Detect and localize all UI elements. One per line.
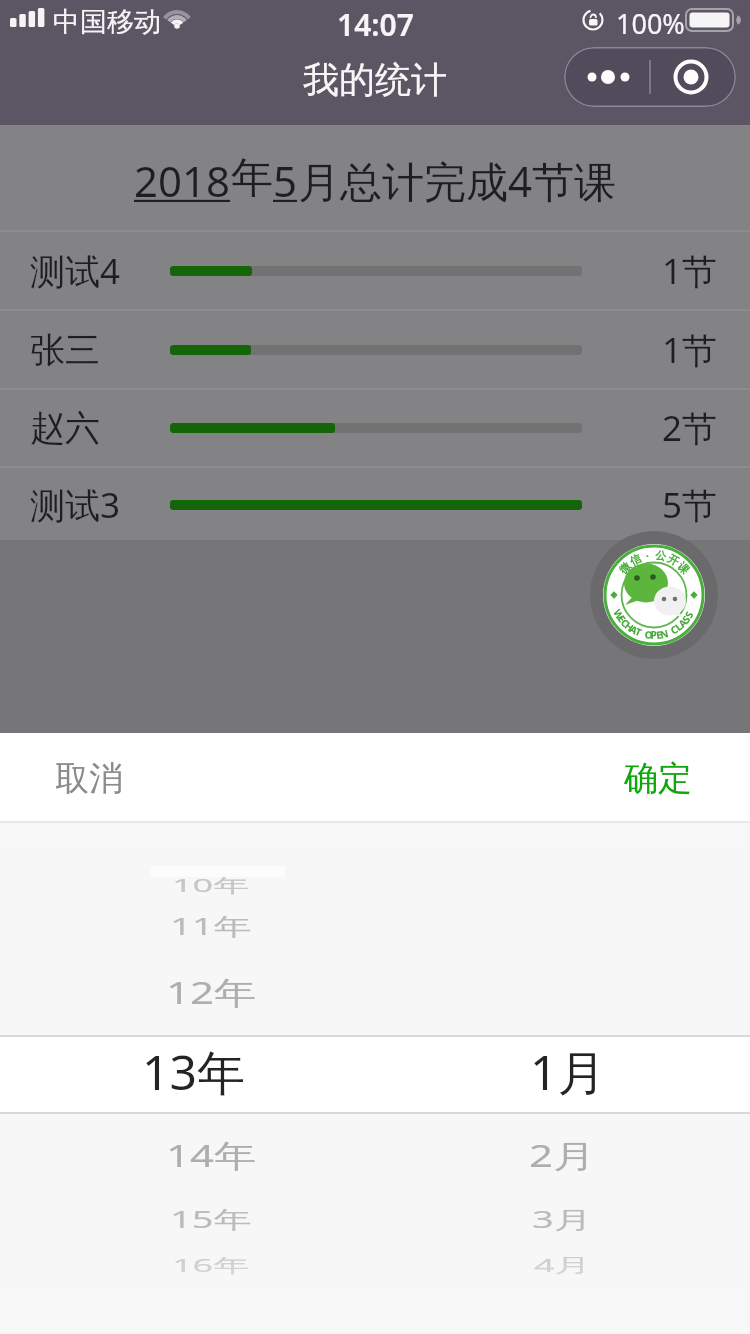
staticText: 2018	[134, 152, 231, 204]
staticText: 取消	[55, 757, 123, 800]
button[interactable]: 确定	[624, 733, 692, 823]
button[interactable]	[590, 531, 718, 659]
staticText: 2节	[662, 404, 718, 452]
staticText: 年	[231, 152, 273, 204]
staticText: 测试3	[30, 481, 121, 529]
staticText: 13年	[142, 1039, 245, 1105]
staticText: 16年	[172, 1252, 250, 1277]
button[interactable]: 张三	[0, 312, 750, 388]
staticText: 1月	[530, 1039, 606, 1105]
staticText: 15年	[170, 1203, 252, 1235]
staticText: 张三	[30, 328, 100, 372]
staticText: 14:07	[337, 4, 414, 45]
staticText: 中国移动	[53, 5, 161, 39]
staticText: 4月	[534, 1252, 591, 1277]
staticText: 赵六	[30, 406, 100, 450]
button[interactable]: 取消	[55, 733, 123, 823]
staticText: 14年	[166, 1133, 257, 1176]
staticText: 月总计完成4节课	[298, 152, 617, 204]
button[interactable]: 测试4	[0, 233, 750, 309]
staticText: 100%	[616, 5, 685, 42]
button[interactable]	[564, 47, 736, 107]
staticText: 5	[273, 152, 298, 204]
staticText: 确定	[624, 757, 692, 800]
staticText: 1节	[662, 326, 718, 374]
staticText: 10年	[172, 872, 250, 897]
button[interactable]: 赵六	[0, 390, 750, 466]
staticText: 我的统计	[303, 57, 447, 102]
staticText: 1节	[662, 247, 718, 295]
staticText: 2月	[529, 1133, 596, 1176]
staticText: 3月	[532, 1203, 592, 1235]
staticText: 测试4	[30, 247, 121, 295]
button[interactable]: 测试3	[0, 467, 750, 543]
staticText: 5节	[662, 481, 718, 529]
staticText: 12年	[166, 970, 257, 1013]
staticText: 11年	[170, 910, 252, 942]
